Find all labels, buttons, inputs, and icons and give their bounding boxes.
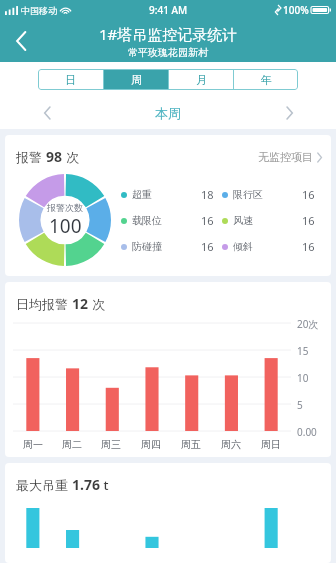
staticText: 日均报警 [16,295,72,313]
staticText: 98 [46,147,63,166]
staticText: 0.00 [297,425,317,439]
staticText: 本周 [60,105,276,121]
staticText: 16 [302,213,315,228]
button[interactable]: Next week [276,100,302,126]
staticText: 日 [65,73,76,87]
button[interactable]: 日 [38,69,103,90]
staticText: 18 [201,187,214,202]
button[interactable]: Back [4,24,38,58]
staticText: 防碰撞 [132,240,162,253]
staticText: 1.76 [72,475,100,494]
staticText: 16 [201,213,214,228]
staticText: 年 [261,73,272,87]
button[interactable]: 无监控项目 [258,150,322,164]
staticText: 常平玫瑰花园新村 [128,46,208,59]
staticText: t [100,476,109,494]
staticText: 限行区 [233,188,263,201]
staticText: 周 [131,73,142,87]
staticText: 15 [297,344,309,358]
staticText: 1#塔吊监控记录统计 [99,24,238,44]
staticText: 周二 [62,438,82,451]
staticText: 16 [302,187,315,202]
staticText: 周六 [221,438,241,451]
staticText: 16 [201,239,214,254]
staticText: 周五 [181,438,201,451]
button[interactable]: 周 [104,69,168,90]
staticText: 周一 [23,438,43,451]
staticText: 无监控项目 [258,150,313,164]
staticText: 周三 [101,438,121,451]
staticText: 100% [283,3,309,17]
button[interactable]: 年 [234,69,298,90]
staticText: 次 [63,148,80,166]
staticText: 载限位 [132,214,162,227]
staticText: 报警次数 [47,202,83,213]
staticText: 倾斜 [233,240,253,253]
staticText: 12 [72,294,89,313]
staticText: 9:41 AM [149,3,188,17]
button[interactable]: 月 [169,69,233,90]
button[interactable]: Previous week [34,100,60,126]
staticText: 次 [89,295,106,313]
staticText: 月 [196,73,207,87]
staticText: 16 [302,239,315,254]
staticText: 10 [297,371,309,385]
staticText: 周四 [141,438,161,451]
staticText: 最大吊重 [16,476,72,494]
staticText: 周日 [261,438,281,451]
staticText: 风速 [233,214,253,227]
staticText: 20次 [297,317,319,331]
staticText: 超重 [132,188,152,201]
staticText: 100 [49,213,82,239]
staticText: 5 [297,398,303,412]
staticText: 中国移动 [21,5,57,16]
staticText: 报警 [16,148,46,166]
